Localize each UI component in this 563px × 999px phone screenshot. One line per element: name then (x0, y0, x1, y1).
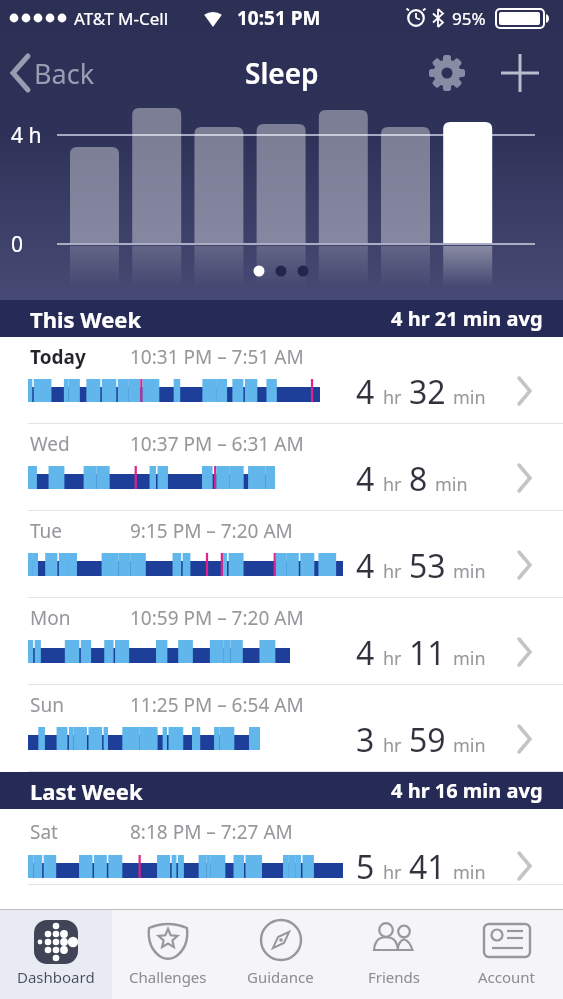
staticText: 8:18 PM – 7:27 AM (130, 819, 293, 845)
staticText: Wed (30, 431, 70, 457)
staticText: hr (383, 385, 402, 410)
staticText: 4 h (11, 121, 42, 150)
staticText: min (435, 472, 468, 497)
button[interactable]: Dashboard (0, 910, 112, 999)
staticText: 53 (409, 544, 446, 588)
staticText: AT&T M-Cell (74, 7, 169, 30)
button[interactable]: Challenges (112, 910, 224, 999)
staticText: 4 hr 21 min avg (391, 305, 543, 332)
staticText: 0 (11, 230, 24, 259)
staticText: Back (34, 55, 95, 92)
staticText: 59 (409, 718, 446, 762)
button[interactable]: Guidance (224, 910, 337, 999)
staticText: 4 (356, 631, 375, 675)
staticText: 32 (409, 370, 446, 414)
button[interactable]: Sat (0, 809, 563, 884)
staticText: Challenges (129, 967, 207, 987)
button[interactable] (425, 51, 469, 95)
staticText: 4 (356, 457, 375, 501)
staticText: Friends (368, 967, 420, 987)
button[interactable]: Back (8, 54, 95, 92)
button[interactable]: Tue (0, 511, 563, 597)
button[interactable]: Friends (337, 910, 450, 999)
staticText: 95% (452, 7, 486, 30)
staticText: 5 (356, 845, 375, 889)
staticText: Tue (30, 518, 63, 544)
staticText: Sat (30, 819, 58, 845)
staticText: hr (383, 472, 402, 497)
staticText: hr (383, 646, 402, 671)
staticText: 10:59 PM – 7:20 AM (130, 605, 304, 631)
staticText: Dashboard (17, 967, 95, 987)
staticText: 9:15 PM – 7:20 AM (130, 518, 293, 544)
staticText: Last Week (30, 776, 143, 806)
staticText: 10:31 PM – 7:51 AM (130, 344, 304, 370)
staticText: 4 hr 16 min avg (391, 777, 543, 804)
staticText: min (453, 860, 486, 885)
button[interactable]: Mon (0, 598, 563, 684)
staticText: min (453, 559, 486, 584)
staticText: 11 (409, 631, 446, 675)
staticText: 4 (356, 370, 375, 414)
staticText: hr (383, 860, 402, 885)
staticText: hr (383, 733, 402, 758)
button[interactable]: Wed (0, 424, 563, 510)
button[interactable] (498, 51, 542, 95)
staticText: min (453, 385, 486, 410)
staticText: 4 (356, 544, 375, 588)
staticText: 3 (356, 718, 375, 762)
staticText: min (453, 733, 486, 758)
staticText: This Week (30, 304, 142, 334)
staticText: Mon (30, 605, 71, 631)
staticText: min (453, 646, 486, 671)
staticText: 8 (409, 457, 428, 501)
staticText: Guidance (247, 967, 314, 987)
button[interactable]: Today (0, 337, 563, 423)
staticText: Today (30, 344, 86, 370)
staticText: 10:37 PM – 6:31 AM (130, 431, 304, 457)
button[interactable]: Account (450, 910, 563, 999)
staticText: Sun (30, 692, 64, 718)
staticText: 41 (409, 845, 446, 889)
staticText: Account (478, 967, 536, 987)
staticText: 10:51 PM (237, 5, 321, 31)
staticText: hr (383, 559, 402, 584)
button[interactable]: Sun (0, 685, 563, 771)
staticText: 11:25 PM – 6:54 AM (130, 692, 304, 718)
staticText: Sleep (245, 54, 319, 92)
